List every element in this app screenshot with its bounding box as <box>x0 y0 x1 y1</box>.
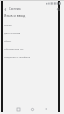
button[interactable]: Сброс <box>3 36 61 44</box>
staticText: Обновление ПО <box>4 47 24 50</box>
button[interactable]: Home <box>25 104 39 114</box>
button[interactable]: Сведения о телефоне <box>3 52 61 60</box>
button[interactable]: Back <box>39 104 53 114</box>
button[interactable]: Дата и время <box>3 28 61 36</box>
button[interactable]: Recent apps <box>11 104 25 114</box>
staticText: Сброс <box>4 39 12 42</box>
staticText: Система <box>9 7 21 11</box>
button[interactable]: Языки <box>3 20 61 28</box>
button[interactable]: Back <box>3 7 8 12</box>
button[interactable]: Обновление ПО <box>3 44 61 52</box>
staticText: Языки <box>4 23 12 26</box>
staticText: Язык и ввод <box>4 13 26 18</box>
button[interactable]: Search <box>56 7 61 12</box>
staticText: Сведения о телефоне <box>4 55 31 58</box>
staticText: Дата и время <box>4 31 21 34</box>
